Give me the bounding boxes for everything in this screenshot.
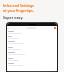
- button[interactable]: [8, 31, 56, 36]
- button[interactable]: [8, 58, 56, 63]
- button[interactable]: [8, 36, 56, 41]
- button[interactable]: [8, 52, 56, 57]
- staticText: at your fingertips.: [3, 8, 34, 13]
- button[interactable]: [8, 47, 56, 52]
- staticText: Super easy.: [3, 15, 24, 20]
- button[interactable]: Notifications: [54, 27, 56, 29]
- staticText: Infos and Settings: [3, 3, 34, 8]
- button[interactable]: [8, 63, 56, 68]
- button[interactable]: [8, 41, 56, 46]
